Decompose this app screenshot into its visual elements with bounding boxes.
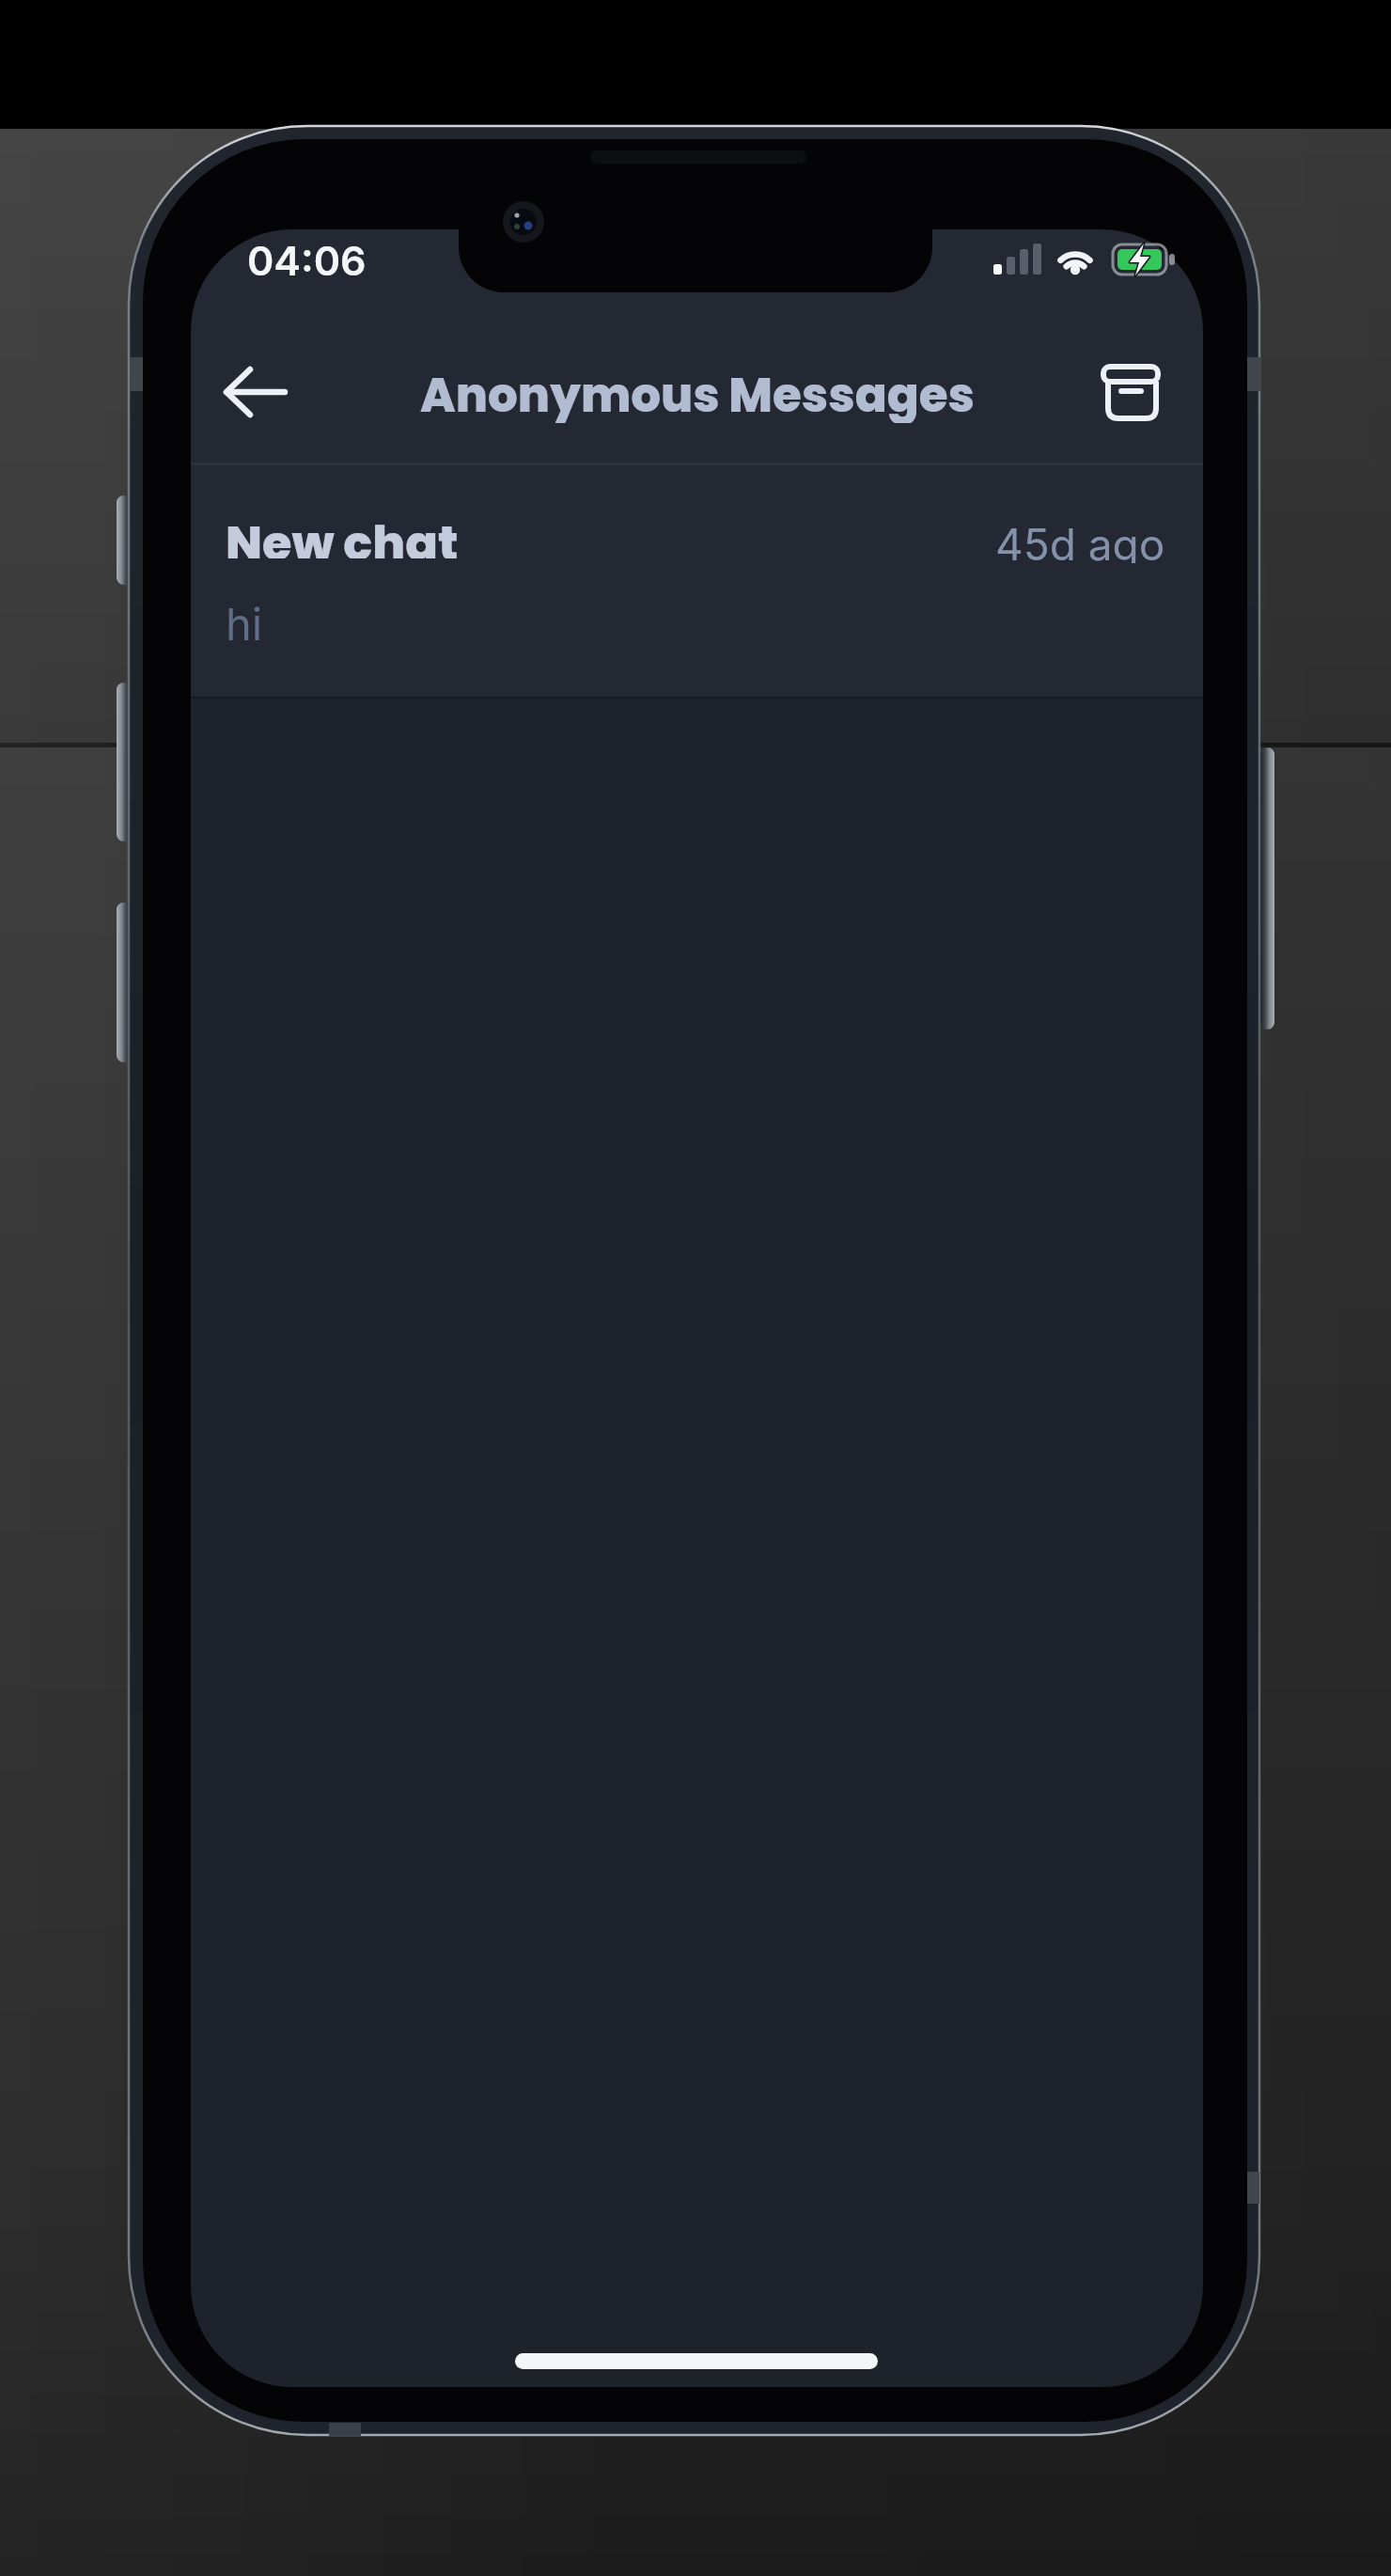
staticText: 04:06 bbox=[247, 236, 367, 285]
staticText: New chat bbox=[226, 510, 459, 558]
button[interactable] bbox=[204, 355, 307, 431]
button[interactable] bbox=[1087, 351, 1178, 435]
staticText: Anonymous Messages bbox=[420, 363, 975, 423]
staticText: 45d ago bbox=[995, 518, 1165, 563]
staticText: hi bbox=[226, 597, 263, 646]
button[interactable]: New chat bbox=[191, 465, 1203, 697]
